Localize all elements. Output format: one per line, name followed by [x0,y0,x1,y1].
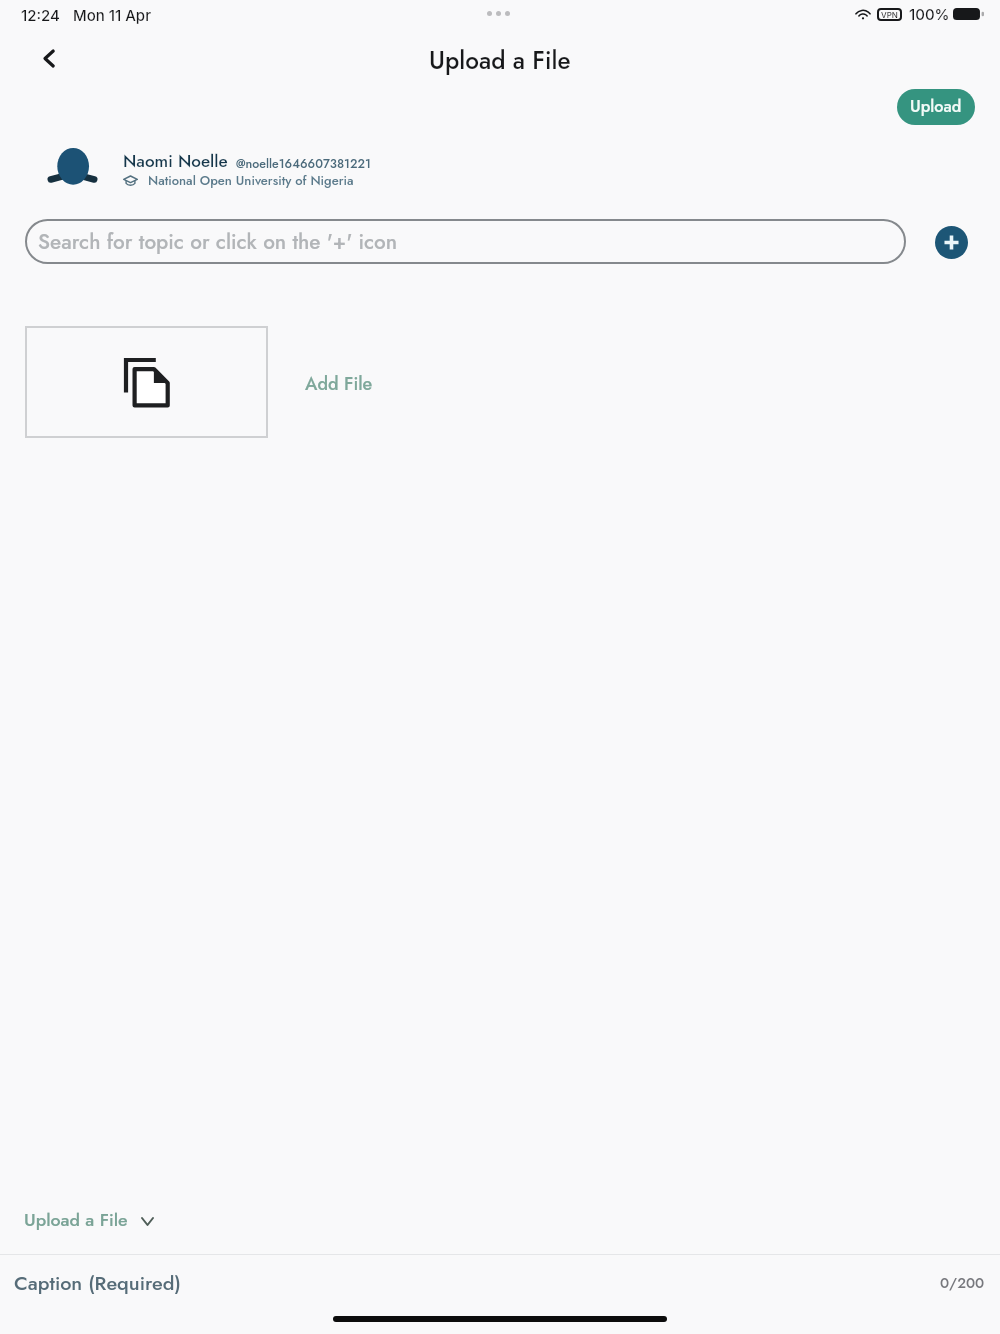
staticText: Upload [910,95,962,119]
staticText: Upload a File [429,43,571,78]
staticText: 12:24 [21,6,60,24]
button[interactable]: Upload [897,89,975,125]
staticText: Search for topic or click on the '+' ico… [38,227,398,257]
button[interactable]: Upload a File [24,1207,153,1233]
staticText: Naomi Noelle [123,149,228,174]
staticText: VPN [881,10,898,20]
staticText: @noelle1646607381221 [236,155,371,173]
staticText: National Open University of Nigeria [148,171,354,190]
button[interactable]: Add file [25,326,268,438]
button[interactable]: Add topic [935,226,968,259]
button[interactable]: Add File [305,371,373,397]
button[interactable]: Back [28,38,69,79]
staticText: 0/200 [940,1272,985,1293]
button[interactable]: Search for topic or click on the '+' ico… [25,219,906,264]
staticText: Upload a File [24,1207,128,1233]
staticText: Caption (Required) [14,1269,181,1298]
staticText: 100% [909,5,950,23]
staticText: Mon 11 Apr [73,6,151,24]
